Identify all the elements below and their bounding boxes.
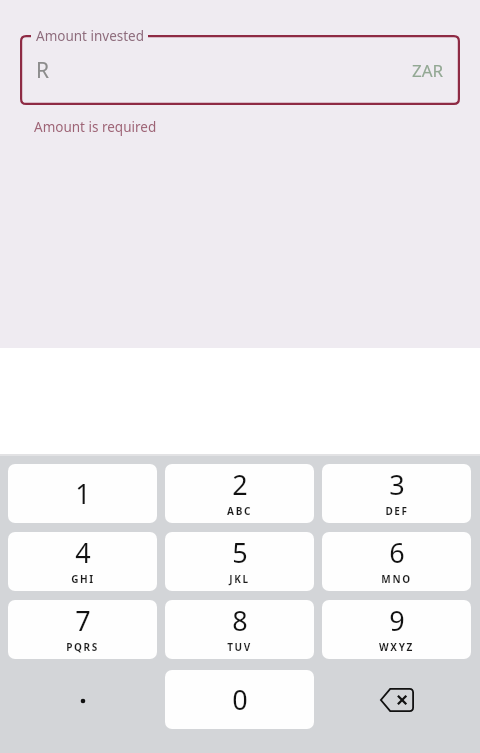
button[interactable]: Decimal point [8,670,157,729]
staticText: PQRS [66,640,99,654]
staticText: 9 [389,602,405,639]
staticText: 2 [232,466,248,503]
staticText: MNO [381,572,412,586]
staticText: WXYZ [379,640,414,654]
staticText: 7 [75,602,91,639]
button[interactable]: 6 [322,532,471,591]
button[interactable]: 3 [322,464,471,523]
staticText: 3 [389,466,405,503]
staticText: 1 [75,475,91,512]
staticText: 5 [232,534,248,571]
button[interactable]: 4 [8,532,157,591]
staticText: 8 [232,602,248,639]
staticText: DEF [385,504,409,518]
button[interactable]: 5 [165,532,314,591]
staticText: R [36,56,50,85]
staticText: ZAR [412,59,444,82]
staticText: GHI [71,572,95,586]
button[interactable]: 9 [322,600,471,659]
staticText: TUV [227,640,252,654]
staticText: 4 [75,534,91,571]
staticText: 6 [389,534,405,571]
staticText: ABC [227,504,252,518]
button[interactable]: 7 [8,600,157,659]
button[interactable]: Backspace [322,670,471,729]
button[interactable]: 8 [165,600,314,659]
staticText: 0 [232,681,248,718]
button[interactable]: R [20,35,460,105]
staticText: JKL [229,572,250,586]
button[interactable]: 1 [8,464,157,523]
staticText: Amount invested [36,27,145,45]
staticText: Amount is required [34,118,157,136]
button[interactable]: 2 [165,464,314,523]
button[interactable]: 0 [165,670,314,729]
